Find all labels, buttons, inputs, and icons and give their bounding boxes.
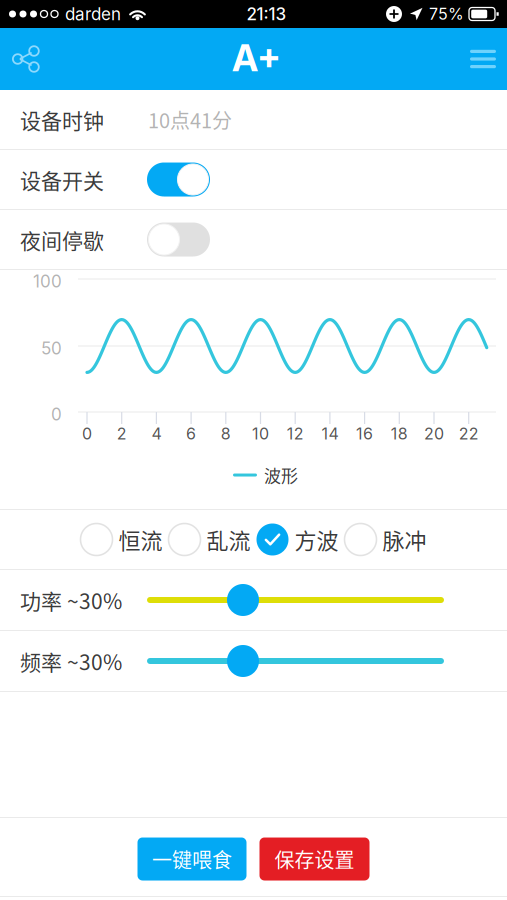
button[interactable]: 设备开关 (104, 162, 210, 196)
staticText: 设备开关 (20, 164, 104, 195)
staticText: 乱流 (206, 524, 250, 555)
button[interactable]: 一键喂食 (137, 837, 246, 880)
button[interactable]: 夜间停歇 (104, 222, 210, 256)
staticText: 4 (151, 424, 161, 443)
staticText: 功率 ~30% (20, 585, 122, 615)
staticText: 50 (41, 338, 62, 359)
staticText: 10点41分 (148, 105, 232, 134)
staticText: 100 (33, 271, 62, 292)
staticText: 0 (51, 404, 62, 425)
button[interactable]: 乱流 (168, 523, 250, 555)
staticText: 20 (424, 424, 444, 443)
staticText: 75% (429, 4, 464, 24)
staticText: 21:13 (246, 4, 286, 24)
staticText: darden (65, 4, 121, 24)
staticText: 频率 ~30% (20, 646, 122, 676)
staticText: 10 (252, 424, 269, 443)
staticText: 保存设置 (274, 844, 354, 873)
staticText: 方波 (294, 524, 338, 555)
button[interactable]: 脉冲 (344, 523, 426, 555)
staticText: 18 (391, 424, 408, 443)
button[interactable]: 方波 (256, 523, 338, 555)
staticText: 12 (287, 424, 304, 443)
button[interactable]: 保存设置 (259, 837, 369, 880)
staticText: 脉冲 (382, 524, 426, 555)
staticText: 6 (186, 424, 196, 443)
staticText: 波形 (264, 463, 298, 487)
staticText: 16 (356, 424, 373, 443)
staticText: A+ (232, 36, 281, 80)
staticText: 恒流 (118, 524, 162, 555)
button[interactable]: Menu (456, 28, 507, 90)
staticText: 22 (459, 424, 479, 443)
staticText: 夜间停歇 (20, 224, 104, 255)
staticText: 8 (221, 424, 231, 443)
staticText: 一键喂食 (152, 844, 232, 873)
staticText: 0 (82, 424, 92, 443)
staticText: 设备时钟 (20, 104, 104, 135)
button[interactable]: Share (0, 28, 53, 90)
staticText: 2 (117, 424, 127, 443)
staticText: 14 (321, 424, 338, 443)
button[interactable]: 恒流 (80, 523, 162, 555)
